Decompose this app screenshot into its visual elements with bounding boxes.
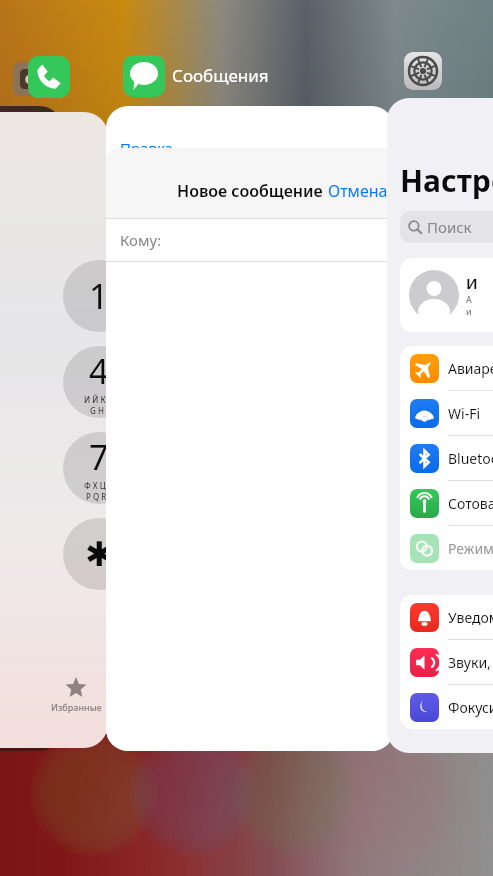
- staticText: ✱: [85, 534, 108, 574]
- staticText: A: [466, 293, 472, 305]
- button[interactable]: 1: [63, 260, 108, 332]
- button[interactable]: 7: [63, 432, 108, 504]
- staticText: Новое сообщение: [177, 180, 323, 202]
- staticText: Избранные: [51, 701, 102, 713]
- staticText: Фокусирование: [448, 698, 493, 717]
- button[interactable]: Фокусирование: [400, 685, 493, 729]
- staticText: Поиск: [427, 217, 472, 237]
- staticText: 4: [89, 348, 108, 394]
- button[interactable]: И: [400, 258, 493, 332]
- button[interactable]: Правка: [106, 106, 394, 751]
- staticText: Ф Х Ц Ч: [84, 480, 108, 491]
- button[interactable]: Отмена: [328, 180, 388, 202]
- staticText: Wi-Fi: [448, 404, 481, 423]
- staticText: Звуки, тактильные сигналы: [448, 653, 493, 672]
- button[interactable]: Настройки: [404, 52, 442, 90]
- button[interactable]: 4: [63, 346, 108, 418]
- staticText: Сообщения: [172, 64, 269, 87]
- staticText: Сотовая связь: [448, 494, 493, 513]
- staticText: и: [466, 305, 472, 317]
- button[interactable]: 1: [0, 112, 108, 748]
- staticText: И Й К Л: [84, 394, 108, 405]
- button[interactable]: Уведомления: [400, 595, 493, 639]
- button[interactable]: Сообщения: [123, 55, 165, 97]
- staticText: Кому:: [120, 230, 162, 250]
- button[interactable]: ✱: [63, 518, 108, 590]
- button[interactable]: Настройки: [387, 98, 493, 753]
- staticText: 1: [89, 273, 108, 319]
- staticText: Bluetooth: [448, 449, 493, 468]
- staticText: И: [466, 273, 478, 293]
- staticText: Настройки: [400, 160, 493, 201]
- staticText: P Q R S: [86, 491, 108, 502]
- staticText: G H I: [90, 405, 108, 416]
- staticText: 7: [89, 434, 108, 480]
- staticText: Правка: [120, 138, 173, 158]
- staticText: Отмена: [328, 180, 388, 202]
- button[interactable]: МЕД: [0, 106, 62, 751]
- staticText: Авиарежим: [448, 359, 493, 378]
- button[interactable]: Режим модема: [400, 526, 493, 570]
- button[interactable]: Авиарежим: [400, 346, 493, 390]
- button[interactable]: Звуки, тактильные сигналы: [400, 640, 493, 684]
- button[interactable]: Камера: [13, 62, 47, 96]
- button[interactable]: Телефон: [28, 56, 70, 98]
- button[interactable]: Избранные: [38, 677, 108, 713]
- button[interactable]: Сотовая связь: [400, 481, 493, 525]
- button[interactable]: Bluetooth: [400, 436, 493, 480]
- button[interactable]: Поиск: [400, 211, 493, 243]
- staticText: Режим модема: [448, 539, 493, 558]
- button[interactable]: Wi-Fi: [400, 391, 493, 435]
- staticText: Уведомления: [448, 608, 493, 627]
